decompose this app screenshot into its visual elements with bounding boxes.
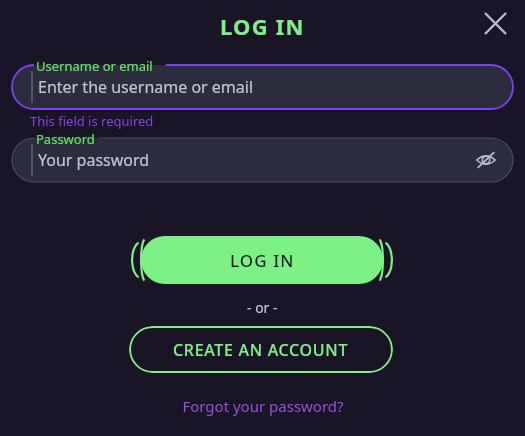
button[interactable]: Password: [12, 138, 513, 182]
staticText: Password: [36, 130, 95, 148]
button[interactable]: CREATE AN ACCOUNT: [129, 326, 393, 373]
button[interactable]: Show password: [471, 145, 501, 175]
staticText: Your password: [38, 149, 150, 171]
staticText: LOG IN: [230, 249, 295, 272]
staticText: Forgot your password?: [182, 396, 344, 416]
staticText: LOG IN: [220, 11, 305, 41]
button[interactable]: Username or email: [12, 65, 513, 109]
button[interactable]: Forgot your password?: [174, 393, 352, 419]
staticText: Username or email: [36, 57, 153, 75]
staticText: Enter the username or email: [38, 76, 254, 98]
button[interactable]: LOG IN: [141, 236, 383, 284]
button[interactable]: Close: [475, 3, 515, 43]
staticText: CREATE AN ACCOUNT: [173, 339, 349, 361]
staticText: - or -: [247, 298, 278, 317]
staticText: This field is required: [30, 112, 154, 130]
